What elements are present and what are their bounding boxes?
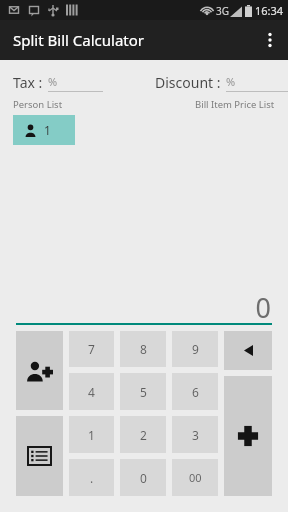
button[interactable]: . — [69, 459, 114, 496]
staticText: 1 — [88, 427, 95, 443]
button[interactable]: 3 — [172, 416, 218, 453]
button[interactable]: 1 — [69, 416, 114, 453]
staticText: 3G — [216, 4, 229, 18]
staticText: % — [48, 74, 58, 89]
button[interactable]: % — [226, 74, 288, 92]
button[interactable]: % — [48, 74, 103, 92]
staticText: 2 — [140, 427, 147, 443]
button[interactable]: 7 — [69, 331, 114, 367]
button[interactable]: 1 — [13, 115, 75, 145]
staticText: Tax : — [13, 73, 43, 92]
staticText: 7 — [88, 341, 95, 357]
staticText: % — [226, 74, 236, 89]
staticText: Split Bill Calculator — [13, 30, 144, 50]
button[interactable]: Add person — [16, 331, 63, 410]
staticText: 16:34 — [255, 3, 284, 18]
button[interactable]: 6 — [172, 373, 218, 410]
staticText: 3 — [192, 427, 199, 443]
button[interactable]: 2 — [120, 416, 166, 453]
staticText: 1 — [44, 122, 51, 138]
staticText: 6 — [192, 384, 199, 400]
button[interactable]: 4 — [69, 373, 114, 410]
button[interactable]: 8 — [120, 331, 166, 367]
button[interactable]: More options — [252, 22, 288, 58]
staticText: 0 — [255, 289, 271, 323]
staticText: 0 — [140, 470, 147, 486]
button[interactable]: 5 — [120, 373, 166, 410]
staticText: Discount : — [155, 73, 221, 92]
staticText: Person List — [13, 98, 63, 111]
button[interactable]: Backspace — [224, 331, 272, 370]
button[interactable]: Bill items — [16, 416, 63, 496]
staticText: 4 — [88, 384, 95, 400]
staticText: 8 — [140, 341, 147, 357]
button[interactable]: Add — [224, 376, 272, 496]
staticText: . — [90, 470, 94, 486]
button[interactable]: 0 — [120, 459, 166, 496]
button[interactable]: 00 — [172, 459, 218, 496]
staticText: Bill Item Price List — [195, 98, 275, 111]
staticText: 5 — [140, 384, 147, 400]
staticText: 00 — [189, 470, 202, 485]
button[interactable]: 9 — [172, 331, 218, 367]
staticText: 9 — [192, 341, 199, 357]
